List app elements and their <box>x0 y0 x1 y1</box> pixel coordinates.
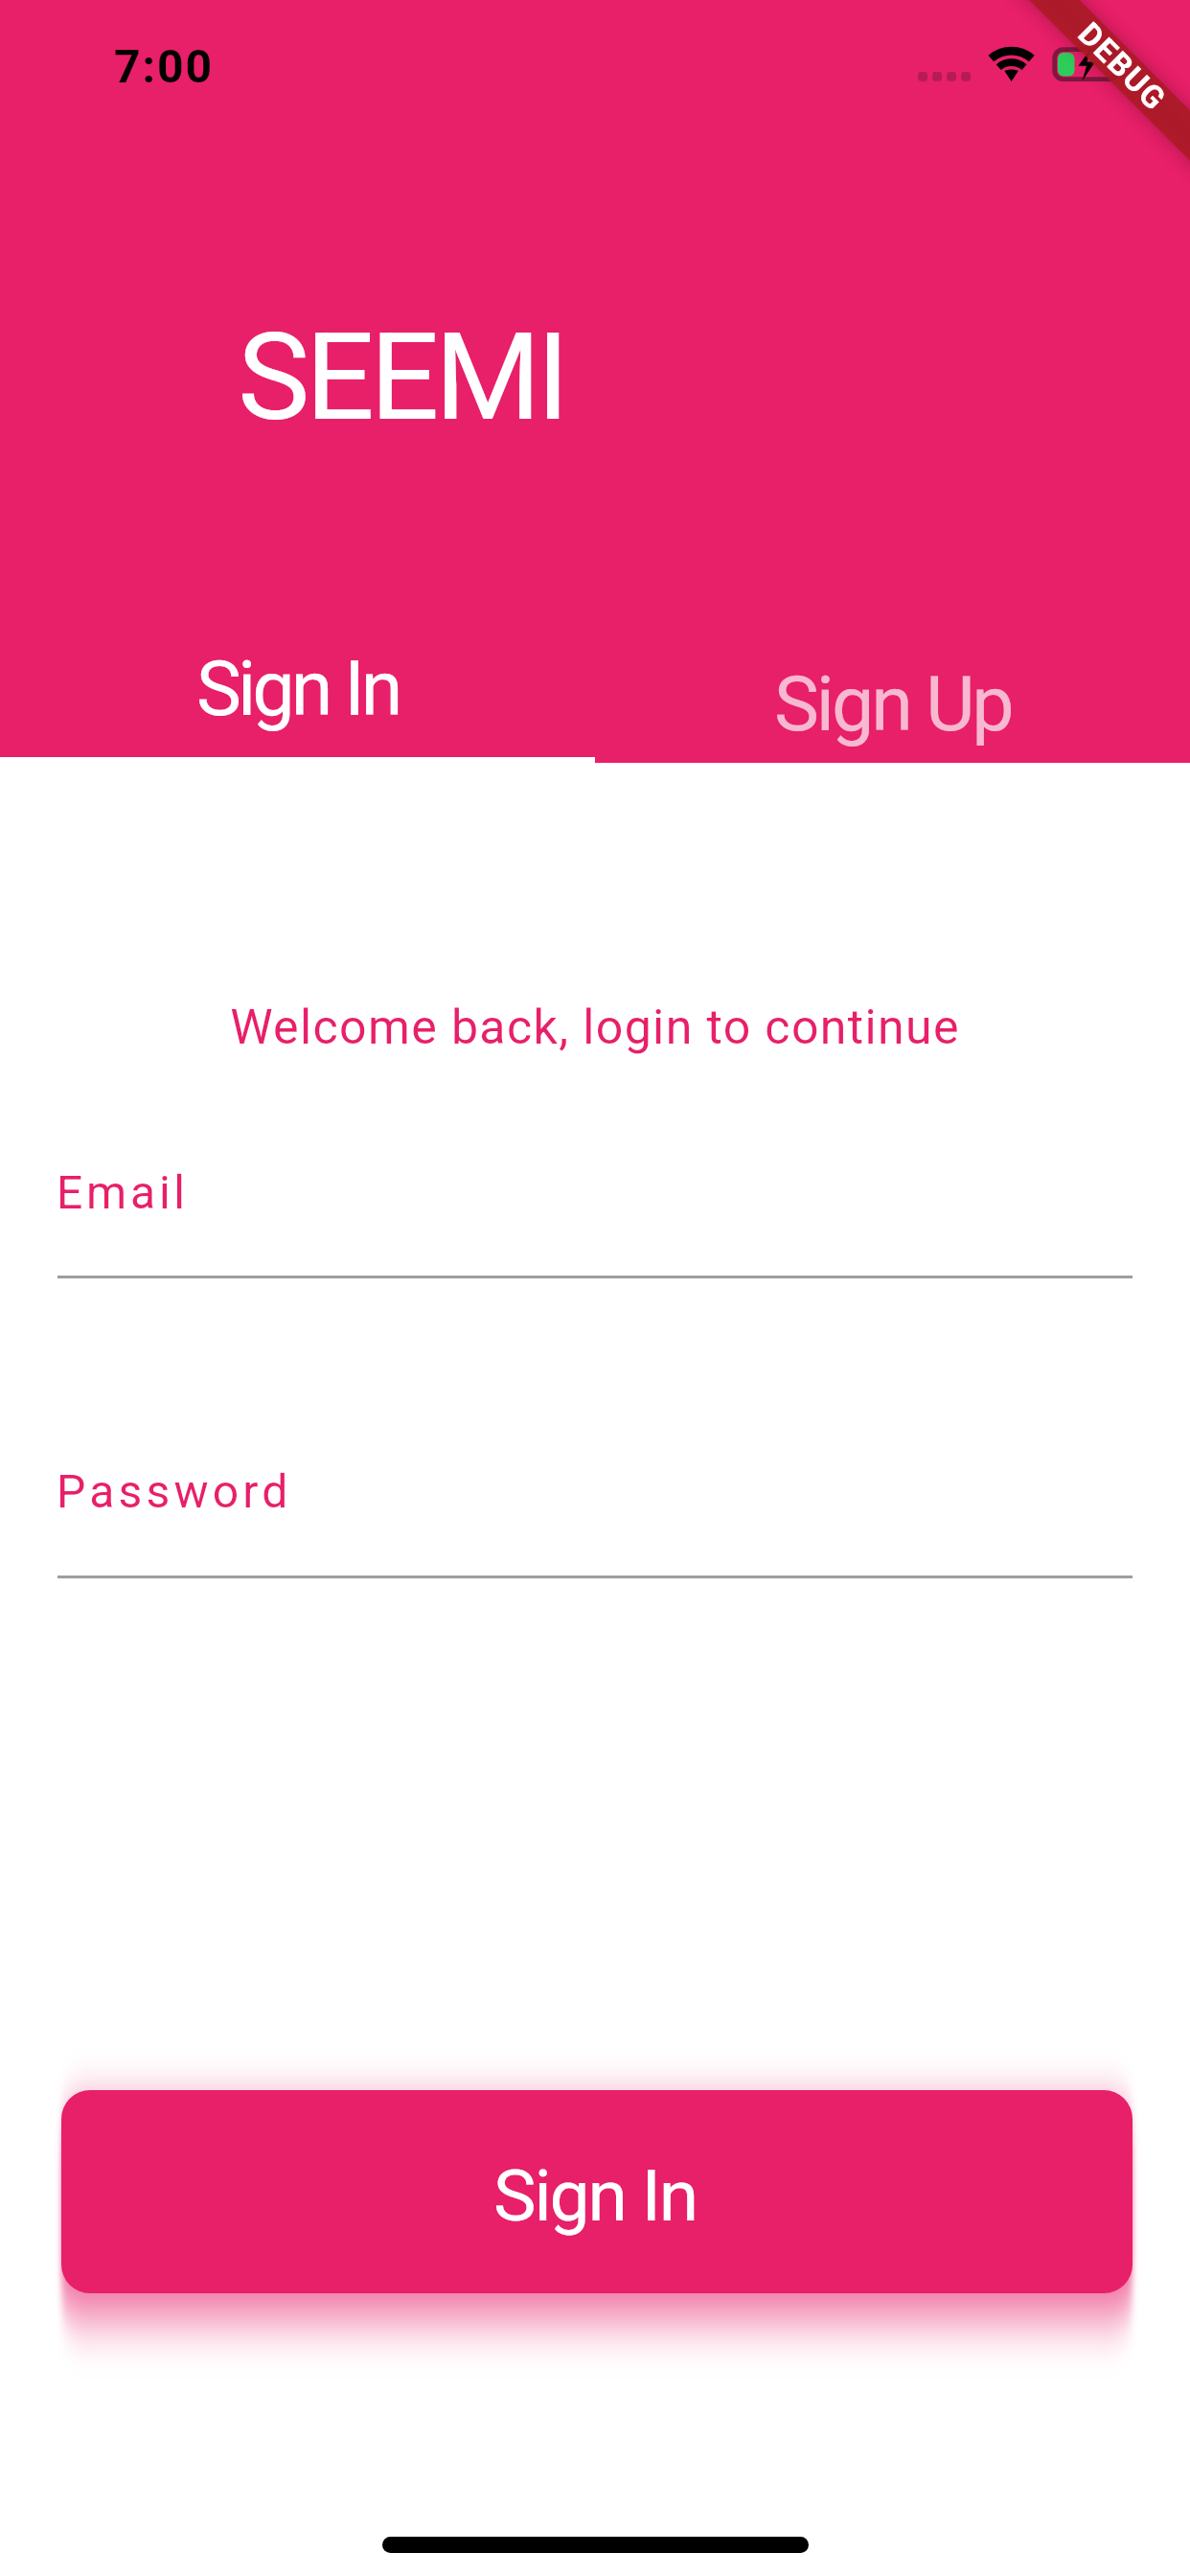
staticText: Sign In <box>196 645 400 734</box>
staticText: Password <box>57 1464 292 1518</box>
staticText: 7:00 <box>114 39 215 93</box>
staticText: Email <box>57 1165 189 1219</box>
staticText: DEBUG <box>1072 15 1174 117</box>
staticText: SEEMI <box>238 306 565 448</box>
staticText: Sign In <box>493 2153 698 2238</box>
other: Debug banner <box>976 0 1190 218</box>
button[interactable]: Sign Up <box>595 600 1190 763</box>
staticText: Sign Up <box>774 660 1012 749</box>
button[interactable]: Sign In <box>0 600 595 763</box>
button[interactable]: Sign In <box>61 2090 1133 2293</box>
staticText: Welcome back, login to continue <box>0 1000 1190 1056</box>
